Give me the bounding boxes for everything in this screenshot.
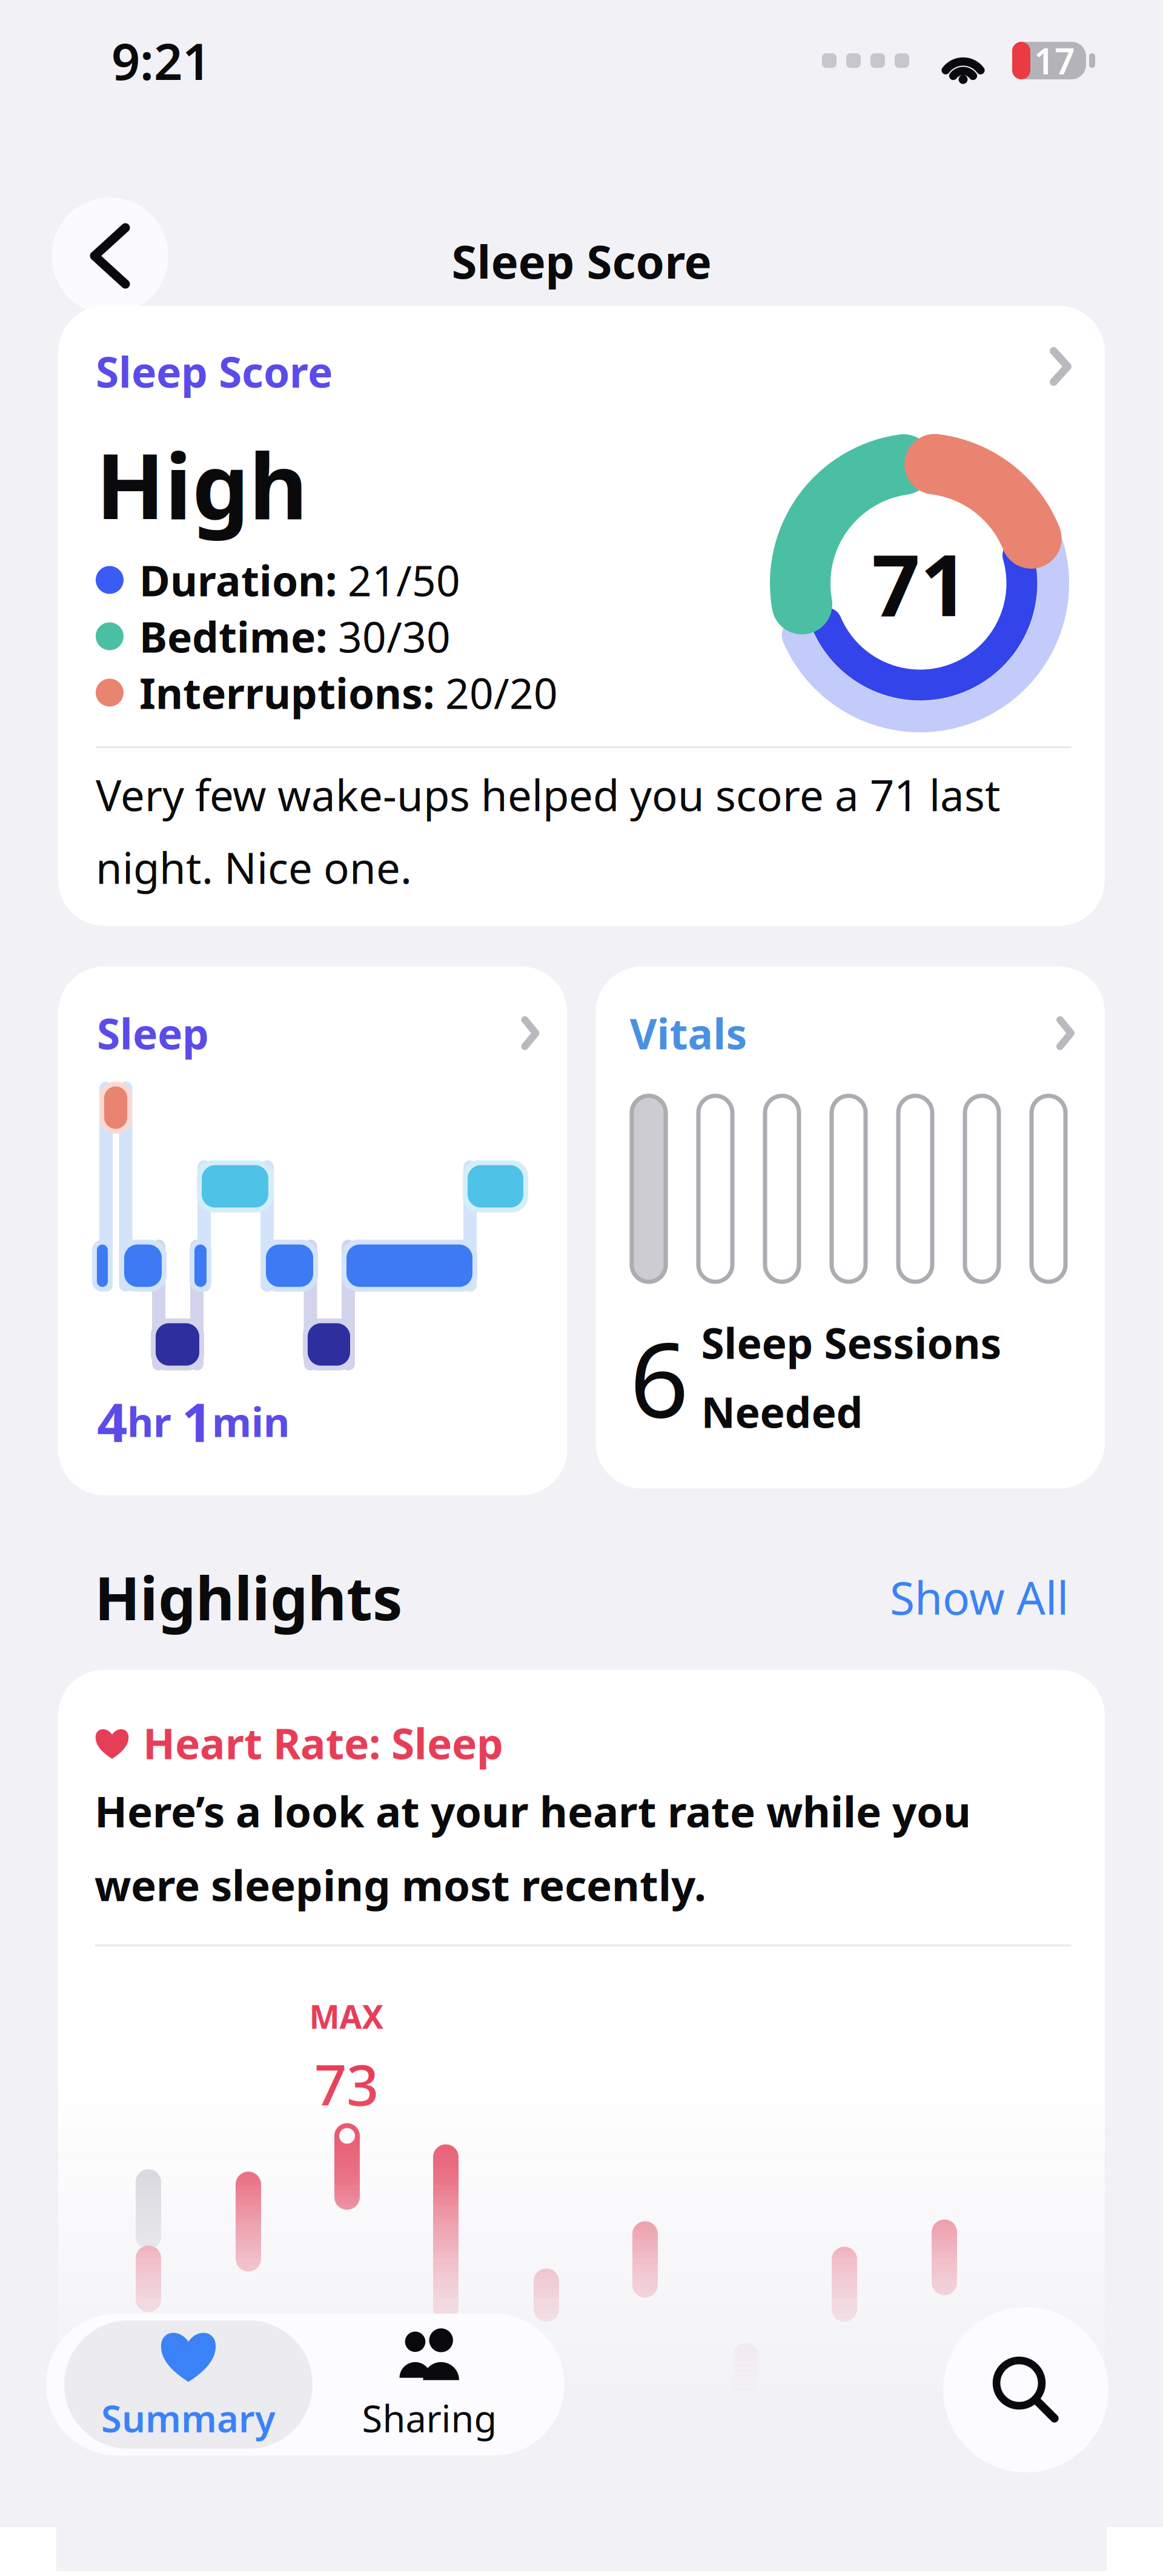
- staticText: Very few wake-ups helped you score a 71 …: [96, 766, 1001, 896]
- staticText: 1: [182, 1386, 212, 1457]
- staticText: Vitals: [630, 1005, 747, 1061]
- button[interactable]: Sharing: [313, 2320, 546, 2449]
- button[interactable]: Show All: [890, 1567, 1069, 1627]
- staticText: 6: [630, 1309, 689, 1446]
- button[interactable]: Back: [51, 197, 168, 314]
- button[interactable]: Sleep: [58, 966, 567, 1495]
- staticText: Heart Rate: Sleep: [143, 1715, 503, 1771]
- button[interactable]: Summary: [64, 2320, 313, 2449]
- staticText: High: [96, 424, 308, 544]
- staticText: Bedtime:: [139, 608, 327, 664]
- staticText: Show All: [890, 1567, 1069, 1627]
- staticText: min: [212, 1395, 290, 1448]
- staticText: Highlights: [94, 1557, 403, 1637]
- staticText: Sleep Score: [96, 343, 333, 399]
- staticText: 4: [97, 1386, 127, 1457]
- staticText: 9:21: [111, 27, 211, 94]
- staticText: Sleep Sessions Needed: [701, 1315, 1002, 1440]
- staticText: Sleep: [97, 1005, 209, 1061]
- staticText: Summary: [101, 2393, 276, 2443]
- staticText: 17: [1034, 37, 1075, 84]
- staticText: Here’s a look at your heart rate while y…: [94, 1782, 971, 1913]
- staticText: Sleep Score: [452, 230, 711, 291]
- staticText: 73: [314, 2046, 379, 2121]
- staticText: Sharing: [362, 2393, 497, 2443]
- button[interactable]: Search: [943, 2307, 1108, 2472]
- button[interactable]: Vitals: [596, 966, 1105, 1489]
- staticText: 20/20: [434, 665, 558, 721]
- staticText: MAX: [309, 1995, 384, 2038]
- button[interactable]: Sleep Score: [58, 306, 1105, 926]
- staticText: 71: [872, 527, 969, 640]
- staticText: Interruptions:: [139, 665, 434, 721]
- staticText: Duration:: [139, 552, 337, 608]
- staticText: 21/50: [337, 552, 460, 608]
- staticText: 30/30: [327, 608, 451, 664]
- staticText: hr: [127, 1395, 182, 1448]
